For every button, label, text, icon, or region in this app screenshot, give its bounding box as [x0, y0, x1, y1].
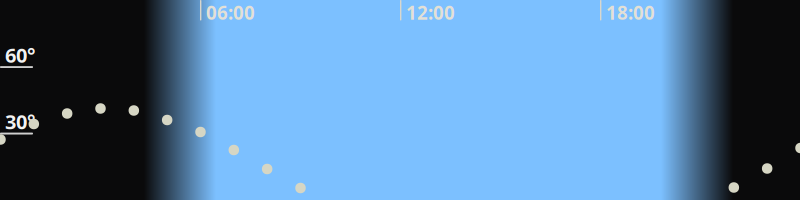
- staticText: 18:00: [606, 0, 655, 25]
- staticText: 30°: [5, 108, 35, 135]
- staticText: 60°: [5, 42, 35, 68]
- staticText: 06:00: [206, 0, 255, 25]
- staticText: 12:00: [406, 0, 455, 25]
